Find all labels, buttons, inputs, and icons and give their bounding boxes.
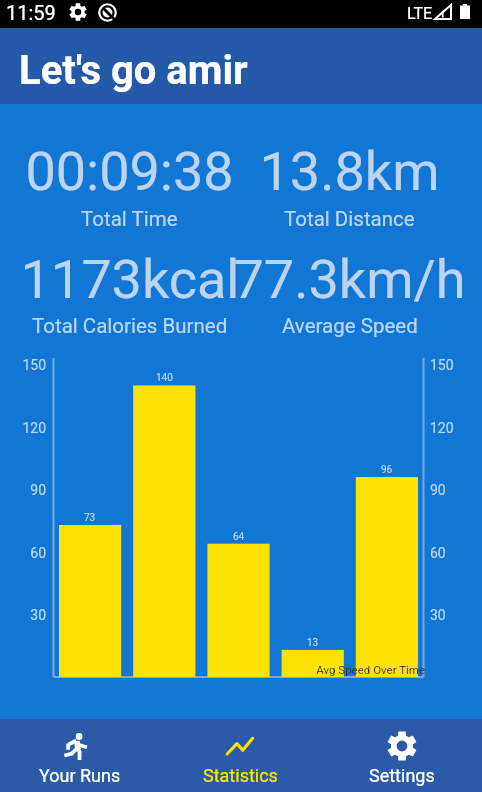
staticText: 73 xyxy=(84,512,96,524)
staticText: 150 xyxy=(0,357,46,373)
staticText: 60 xyxy=(430,545,446,561)
staticText: Let's go amir xyxy=(19,47,248,94)
staticText: Total Calories Burned xyxy=(32,314,228,338)
other: Quick settings xyxy=(98,3,117,22)
other: Settings xyxy=(69,3,87,21)
staticText: 90 xyxy=(430,482,446,498)
staticText: Total Time xyxy=(81,207,178,231)
staticText: Statistics xyxy=(203,765,278,786)
staticText: 96 xyxy=(381,464,393,476)
staticText: 30 xyxy=(0,607,46,623)
staticText: 64 xyxy=(233,531,245,543)
staticText: 77.3km/h xyxy=(233,248,466,311)
staticText: 120 xyxy=(0,420,46,436)
staticText: 1173kcal xyxy=(20,248,240,311)
staticText: Total Distance xyxy=(284,207,415,231)
staticText: 11:59 xyxy=(6,1,56,24)
staticText: 13.8km xyxy=(259,140,440,203)
staticText: 140 xyxy=(156,372,173,384)
staticText: Your Runs xyxy=(39,765,121,786)
staticText: 120 xyxy=(430,420,454,436)
button[interactable]: Settings xyxy=(321,719,482,792)
staticText: 13 xyxy=(307,637,319,649)
staticText: 30 xyxy=(430,607,446,623)
staticText: Average Speed xyxy=(282,314,418,338)
staticText: 60 xyxy=(0,545,46,561)
button[interactable]: Statistics xyxy=(160,719,321,792)
staticText: Settings xyxy=(369,765,435,786)
staticText: 150 xyxy=(430,357,454,373)
button[interactable]: Your Runs xyxy=(0,719,160,792)
staticText: 90 xyxy=(0,482,46,498)
staticText: 00:09:38 xyxy=(25,140,234,203)
staticText: LTE xyxy=(407,4,433,23)
staticText: Avg Speed Over Time xyxy=(265,663,425,676)
